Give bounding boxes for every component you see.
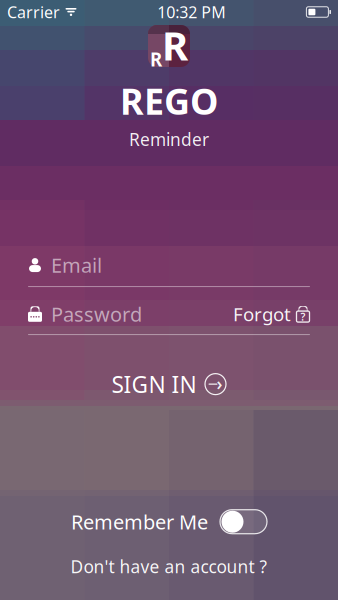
staticText: ? bbox=[300, 309, 305, 324]
staticText: REGO bbox=[120, 77, 218, 125]
button[interactable]: SIGN IN bbox=[97, 361, 240, 407]
staticText: R bbox=[162, 18, 188, 71]
button[interactable]: Forgot bbox=[233, 302, 310, 326]
staticText: Password bbox=[51, 301, 142, 327]
staticText: R bbox=[150, 47, 162, 72]
staticText: 10:32 PM bbox=[157, 1, 226, 23]
staticText: Reminder bbox=[129, 128, 209, 151]
button[interactable]: Remember Me bbox=[71, 508, 267, 535]
staticText: Forgot bbox=[233, 302, 291, 326]
staticText: Email bbox=[51, 252, 102, 278]
staticText: › bbox=[216, 372, 222, 395]
staticText: Don't have an account ? bbox=[70, 555, 267, 578]
staticText: SIGN IN bbox=[111, 369, 196, 399]
staticText: Carrier bbox=[7, 1, 60, 23]
staticText: Remember Me bbox=[71, 508, 208, 535]
button[interactable]: Don't have an account ? bbox=[60, 549, 277, 584]
